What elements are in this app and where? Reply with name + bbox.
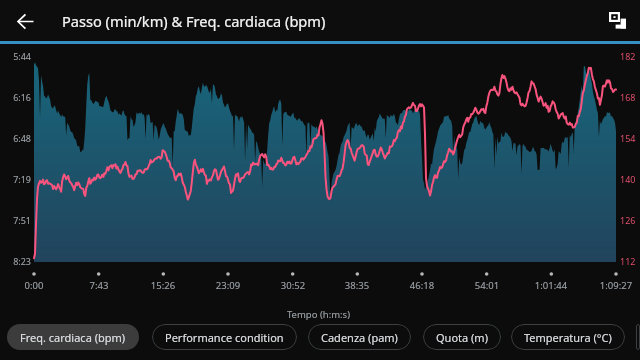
button[interactable]: Split screen [603,6,633,36]
staticText: 7:43 [69,279,129,292]
staticText: 38:35 [327,279,387,292]
staticText: 23:09 [198,279,258,292]
staticText: 7:51 [0,214,31,226]
staticText: 1:01:44 [521,279,581,292]
staticText: 7:19 [0,173,31,185]
button[interactable]: Temperatura (°C) [511,324,625,350]
staticText: 140 [620,173,636,185]
button[interactable]: Cadenza (pam) [308,324,411,350]
staticText: Passo (min/km) & Freq. cardiaca (bpm) [62,11,326,31]
button[interactable]: Freq. cardiaca (bpm) [7,324,139,350]
staticText: 154 [620,132,636,144]
button[interactable]: Back [9,5,41,37]
staticText: 5:44 [0,50,31,62]
button[interactable]: Quota (m) [423,324,501,350]
staticText: 168 [620,91,636,103]
staticText: 15:26 [133,279,193,292]
staticText: 126 [620,214,636,226]
staticText: 0:00 [4,279,64,292]
staticText: Performance condition [165,330,284,345]
staticText: Cadenza (pam) [321,330,398,345]
staticText: 1:09:27 [586,279,640,292]
staticText: 8:23 [0,255,31,267]
button[interactable]: Altro [636,324,640,350]
staticText: 54:01 [457,279,517,292]
staticText: Quota (m) [436,330,488,345]
staticText: Tempo (h:m:s) [287,308,351,321]
staticText: 6:48 [0,132,31,144]
staticText: 46:18 [392,279,452,292]
button[interactable]: Performance condition [152,324,297,350]
staticText: Temperatura (°C) [524,330,612,345]
staticText: 182 [620,50,636,62]
staticText: Freq. cardiaca (bpm) [20,330,126,345]
staticText: 112 [620,255,636,267]
staticText: 6:16 [0,91,31,103]
staticText: 30:52 [263,279,323,292]
